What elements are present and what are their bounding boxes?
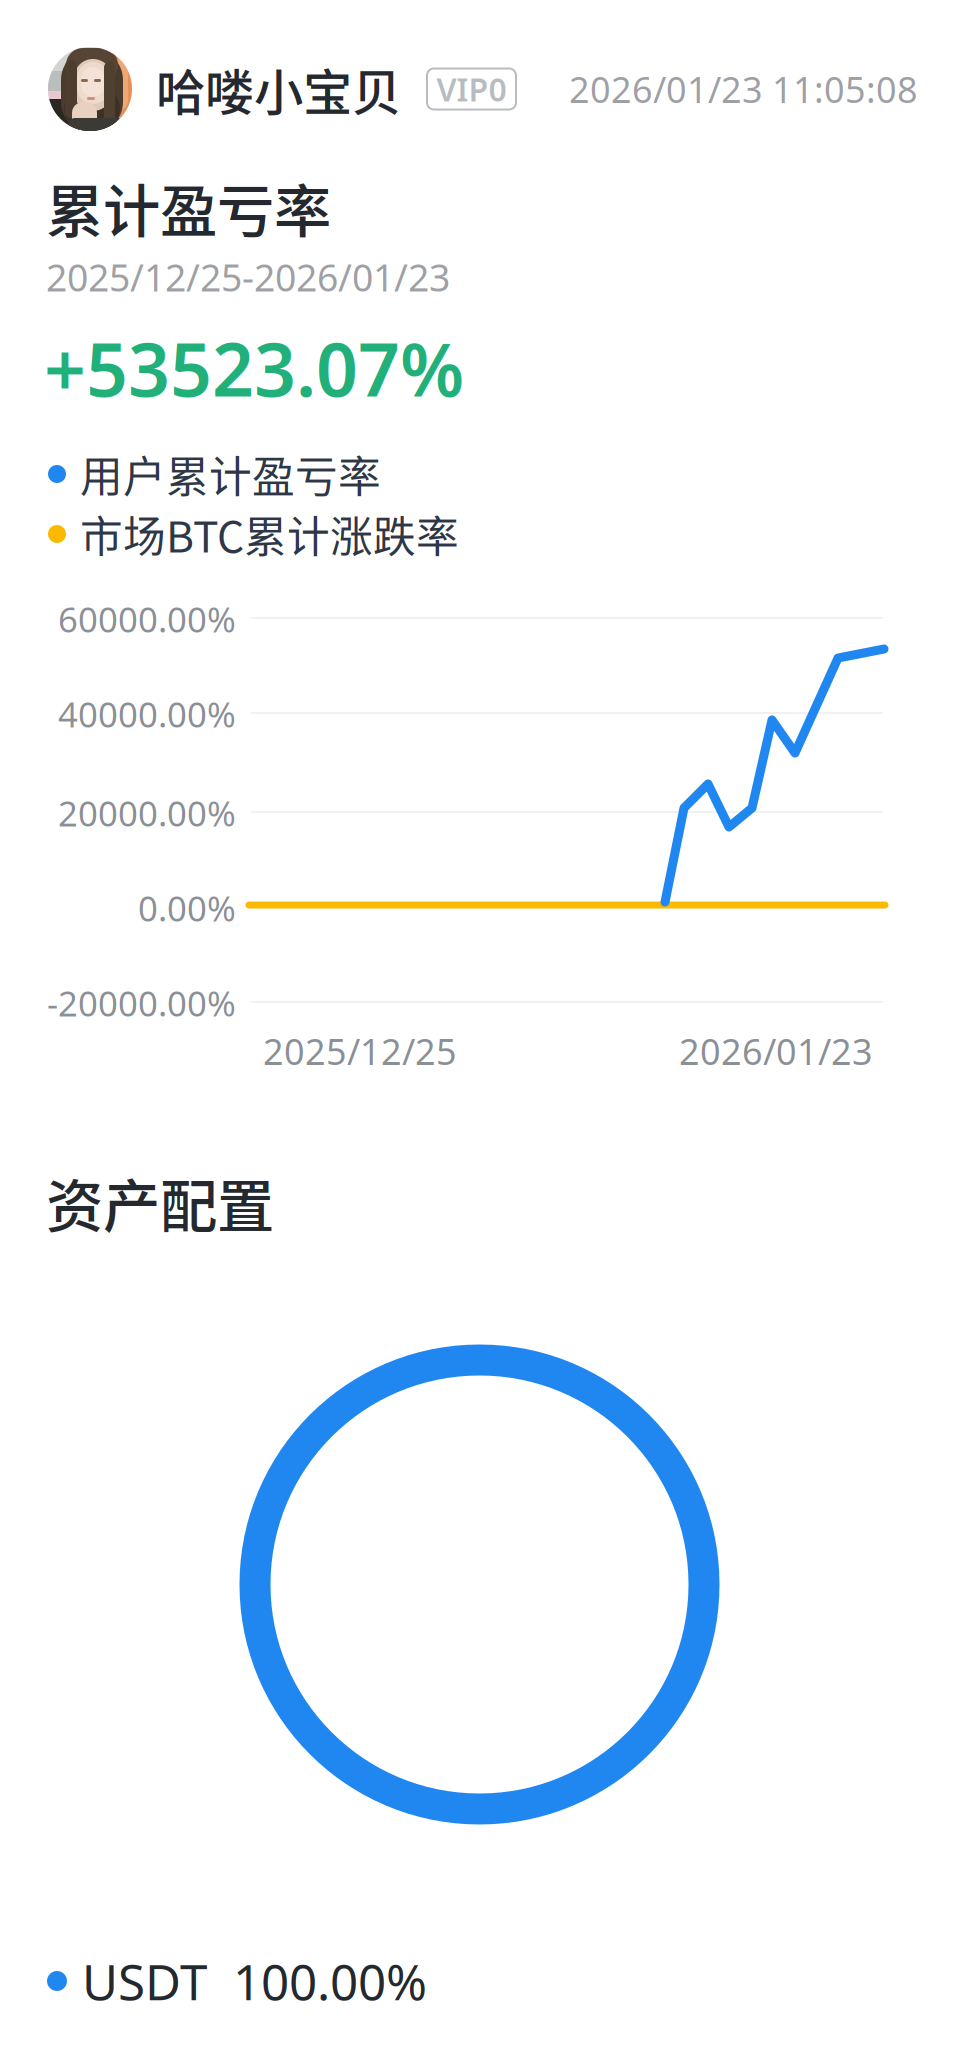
staticText: 市场BTC累计涨跌率	[80, 503, 459, 565]
staticText: 2026/01/23 11:05:08	[569, 64, 918, 113]
staticText: 2025/12/25	[263, 1026, 457, 1075]
staticText: 2025/12/25-2026/01/23	[46, 252, 450, 302]
staticText: -20000.00%	[47, 979, 236, 1027]
staticText: 60000.00%	[58, 595, 236, 643]
staticText: 2026/01/23	[679, 1026, 873, 1075]
staticText: 20000.00%	[58, 789, 236, 837]
staticText: 资产配置	[46, 1160, 274, 1243]
staticText: 0.00%	[138, 884, 236, 932]
staticText: 40000.00%	[58, 690, 236, 738]
staticText: 用户累计盈亏率	[80, 443, 381, 505]
staticText: +53523.07%	[44, 318, 464, 418]
staticText: VIP0	[436, 67, 506, 111]
button[interactable]: 哈喽小宝贝	[48, 47, 918, 131]
staticText: 累计盈亏率	[46, 165, 331, 248]
staticText: USDT 100.00%	[82, 1947, 427, 2015]
staticText: 哈喽小宝贝	[156, 53, 401, 125]
